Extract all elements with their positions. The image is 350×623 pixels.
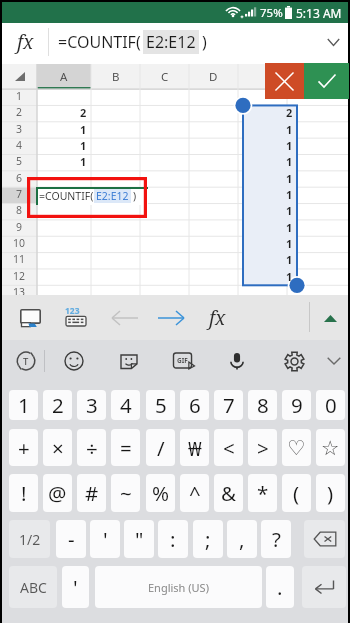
button[interactable]: B	[91, 64, 140, 89]
button[interactable]: GIF	[167, 344, 200, 378]
button[interactable]: <	[214, 429, 243, 466]
staticText: fx	[17, 29, 34, 55]
button[interactable]: :	[158, 520, 188, 558]
button[interactable]: >	[248, 429, 277, 466]
button[interactable]: A	[37, 64, 91, 89]
button[interactable]: Translate	[9, 344, 42, 378]
button[interactable]: @	[43, 474, 72, 512]
button[interactable]: ☆	[316, 429, 345, 466]
button[interactable]: C	[140, 64, 189, 89]
button[interactable]: Keyboard settings	[278, 344, 311, 378]
button[interactable]: 0	[316, 390, 345, 420]
staticText: /	[157, 434, 165, 462]
button[interactable]: 6	[180, 390, 209, 420]
button[interactable]: "	[124, 520, 154, 558]
button[interactable]: ;	[193, 520, 223, 558]
button[interactable]: ^	[180, 474, 209, 512]
button[interactable]: Stickers	[112, 344, 145, 378]
button[interactable]: ~	[111, 474, 140, 512]
button[interactable]: Insert function	[199, 300, 235, 336]
staticText: 5	[16, 154, 23, 168]
button[interactable]: '	[90, 520, 120, 558]
staticText: GIF	[177, 356, 188, 365]
button[interactable]: Backspace	[304, 520, 345, 558]
button[interactable]: #	[77, 474, 106, 512]
button[interactable]: )	[316, 474, 345, 512]
staticText: >	[257, 434, 269, 462]
button[interactable]: Next cell	[153, 300, 189, 336]
staticText: 1	[286, 154, 293, 169]
button[interactable]: ABC	[9, 566, 57, 608]
button[interactable]: Enter	[302, 566, 346, 608]
button[interactable]: ?	[261, 520, 291, 558]
staticText: 7	[223, 391, 235, 419]
button[interactable]: Previous cell	[107, 300, 143, 336]
staticText: %	[152, 479, 170, 507]
staticText: E2:E12	[96, 189, 129, 203]
button[interactable]: 1/2	[9, 520, 50, 558]
staticText: =	[120, 434, 132, 462]
button[interactable]: Voice input	[220, 344, 253, 378]
staticText: )	[327, 479, 334, 507]
button[interactable]: *	[248, 474, 277, 512]
button[interactable]: More options	[317, 344, 350, 378]
button[interactable]: &	[214, 474, 243, 512]
staticText: 75%	[260, 5, 283, 21]
staticText: ,	[239, 525, 245, 553]
staticText: ~	[120, 479, 132, 507]
staticText: 8	[16, 203, 23, 217]
button[interactable]: 8	[248, 390, 277, 420]
button[interactable]: =	[111, 429, 140, 466]
button[interactable]: Collapse	[313, 300, 348, 336]
button[interactable]: English (US)	[95, 566, 262, 608]
staticText: &	[221, 479, 237, 507]
button[interactable]: Numeric keypad	[58, 300, 94, 336]
button[interactable]: %	[146, 474, 175, 512]
button[interactable]: ÷	[77, 429, 106, 466]
button[interactable]: .	[266, 566, 294, 608]
staticText: 13	[13, 285, 26, 299]
staticText: 1	[80, 154, 87, 169]
button[interactable]: Formula	[2, 23, 48, 61]
button[interactable]: 9	[282, 390, 311, 420]
staticText: !	[21, 479, 27, 507]
staticText: 1	[286, 187, 293, 202]
button[interactable]: Cancel	[265, 63, 304, 99]
staticText: 1	[16, 89, 23, 103]
button[interactable]: ×	[43, 429, 72, 466]
button[interactable]: ₩	[180, 429, 209, 466]
button[interactable]: 5	[146, 390, 175, 420]
staticText: '	[103, 525, 108, 553]
staticText: D	[209, 69, 218, 85]
button[interactable]: '	[62, 566, 89, 608]
staticText: 9	[291, 391, 303, 419]
staticText: 5:13 AM	[296, 5, 342, 21]
button[interactable]: (	[282, 474, 311, 512]
button[interactable]: +	[9, 429, 38, 466]
button[interactable]: D	[189, 64, 238, 89]
button[interactable]: ,	[227, 520, 257, 558]
staticText: 10	[13, 236, 26, 250]
staticText: fx	[209, 305, 226, 331]
button[interactable]: Confirm	[304, 63, 349, 99]
button[interactable]: Show screen	[12, 300, 48, 336]
staticText: English (US)	[148, 580, 209, 595]
staticText: 1	[286, 171, 293, 186]
button[interactable]: !	[9, 474, 38, 512]
staticText: 1	[286, 252, 293, 267]
staticText: 3	[86, 391, 98, 419]
staticText: 1	[286, 203, 293, 218]
button[interactable]: 3	[77, 390, 106, 420]
button[interactable]: ♡	[282, 429, 311, 466]
button[interactable]: 2	[43, 390, 72, 420]
button[interactable]: 1	[9, 390, 38, 420]
button[interactable]: Emoji	[57, 344, 90, 378]
staticText: )	[202, 31, 207, 53]
staticText: 12	[13, 269, 26, 283]
button[interactable]: Expand formula bar	[318, 23, 348, 61]
button[interactable]: 4	[111, 390, 140, 420]
staticText: 1/2	[19, 530, 41, 549]
button[interactable]: /	[146, 429, 175, 466]
button[interactable]: -	[56, 520, 86, 558]
button[interactable]: 7	[214, 390, 243, 420]
